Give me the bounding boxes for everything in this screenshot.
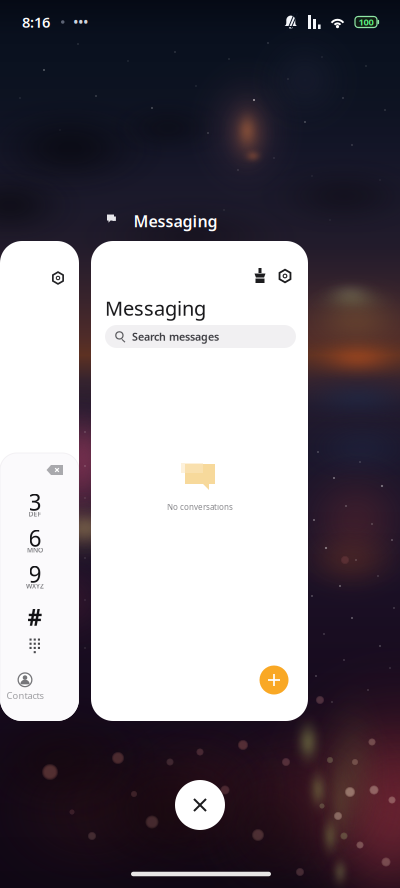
staticText: ••• bbox=[73, 14, 88, 30]
staticText: 8:16 bbox=[22, 12, 50, 32]
button[interactable]: 9 bbox=[15, 564, 55, 596]
button[interactable]: 3 bbox=[15, 492, 55, 524]
button[interactable]: Close all bbox=[175, 780, 225, 830]
staticText: Messaging bbox=[133, 210, 217, 232]
button[interactable]: Keypad bbox=[22, 633, 48, 659]
button[interactable]: Settings bbox=[270, 261, 300, 291]
button[interactable]: Phone settings bbox=[44, 264, 72, 292]
button[interactable]: New conversation bbox=[259, 665, 288, 694]
staticText: 6 bbox=[28, 523, 41, 553]
staticText: DEF bbox=[28, 510, 41, 518]
staticText: Contacts bbox=[6, 689, 43, 702]
staticText: 9 bbox=[28, 559, 41, 589]
staticText: Search messages bbox=[132, 329, 219, 344]
staticText: 3 bbox=[28, 487, 41, 517]
button[interactable]: 6 bbox=[15, 528, 55, 560]
staticText: Messaging bbox=[105, 295, 206, 321]
staticText: MNO bbox=[27, 546, 43, 554]
staticText: WXYZ bbox=[26, 582, 44, 590]
button[interactable]: Pound bbox=[18, 604, 52, 630]
button[interactable]: Backspace bbox=[41, 459, 69, 481]
staticText: # bbox=[27, 602, 42, 632]
button[interactable]: Search messages bbox=[105, 325, 296, 348]
staticText: 100 bbox=[358, 16, 373, 28]
staticText: No conversations bbox=[167, 502, 233, 512]
button[interactable]: Contacts bbox=[2, 672, 48, 702]
button[interactable]: Clean up bbox=[245, 261, 275, 291]
